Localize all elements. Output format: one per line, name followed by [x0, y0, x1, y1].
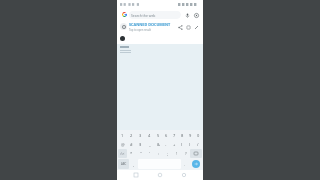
staticText: ( [181, 142, 183, 147]
staticText: 2 [130, 133, 133, 138]
button[interactable]: Share [176, 23, 184, 31]
staticText: _ [149, 142, 151, 147]
button[interactable]: 9 [186, 131, 194, 139]
button[interactable]: / [194, 140, 202, 148]
staticText: Tap to open result [129, 28, 151, 32]
staticText: " [140, 151, 142, 156]
button[interactable]: + [170, 140, 178, 148]
button[interactable]: @ [118, 140, 127, 148]
button[interactable]: Back [179, 170, 189, 180]
staticText: ; [167, 151, 169, 156]
button[interactable]: Home [155, 170, 165, 180]
button[interactable]: Edit [192, 23, 200, 31]
staticText: 8 [181, 133, 184, 138]
staticText: : [158, 151, 160, 156]
button[interactable]: , [129, 159, 138, 169]
staticText: ABC [121, 162, 127, 166]
button[interactable]: $ [136, 140, 145, 148]
staticText: 4 [148, 133, 151, 138]
button[interactable]: ! [172, 149, 181, 158]
button[interactable]: Copy [184, 23, 192, 31]
button[interactable]: ? [181, 149, 190, 158]
button[interactable]: - [162, 140, 170, 148]
button[interactable]: =\< [118, 149, 127, 158]
button[interactable]: 2 [127, 131, 136, 139]
button[interactable]: 6 [162, 131, 170, 139]
staticText: 6 [165, 133, 168, 138]
button[interactable]: Voice search [183, 11, 191, 19]
button[interactable]: 4 [145, 131, 154, 139]
staticText: SCANNED DOCUMENT [129, 22, 171, 27]
button[interactable]: : [154, 149, 163, 158]
staticText: @ [121, 142, 125, 147]
button[interactable]: App icon [120, 23, 127, 30]
staticText: * [130, 151, 133, 156]
staticText: $ [139, 142, 142, 147]
staticText: . [184, 162, 186, 167]
staticText: ) [189, 142, 191, 147]
button[interactable]: SCANNED DOCUMENT [129, 22, 176, 32]
button[interactable]: _ [145, 140, 154, 148]
button[interactable]: * [127, 149, 136, 158]
staticText: ! [176, 151, 178, 156]
button[interactable]: ; [163, 149, 172, 158]
staticText: Search the web [131, 13, 156, 18]
staticText: =\< [120, 152, 125, 156]
button[interactable]: Enter [192, 160, 200, 168]
button[interactable]: ' [145, 149, 154, 158]
staticText: - [165, 142, 167, 147]
button[interactable]: & [154, 140, 162, 148]
button[interactable]: Backspace [190, 149, 202, 158]
button[interactable]: 8 [178, 131, 186, 139]
button[interactable]: ) [186, 140, 194, 148]
staticText: 3 [139, 133, 142, 138]
staticText: 1 [121, 133, 124, 138]
button[interactable]: Search the web [120, 10, 181, 19]
staticText: 0 [197, 133, 200, 138]
staticText: 5 [157, 133, 160, 138]
button[interactable]: 5 [154, 131, 162, 139]
button[interactable]: " [136, 149, 145, 158]
staticText: # [130, 142, 133, 147]
staticText: + [173, 142, 176, 147]
staticText: & [157, 142, 160, 147]
staticText: ? [185, 151, 187, 156]
button[interactable]: Account [120, 36, 125, 41]
staticText: , [133, 162, 135, 167]
button[interactable]: # [127, 140, 136, 148]
button[interactable]: 0 [194, 131, 202, 139]
button[interactable]: 1 [118, 131, 127, 139]
button[interactable]: Recents [131, 170, 141, 180]
button[interactable]: ( [178, 140, 186, 148]
staticText: 9 [189, 133, 192, 138]
button[interactable]: Google Lens [192, 11, 200, 19]
button[interactable]: 7 [170, 131, 178, 139]
button[interactable]: ABC [118, 159, 129, 169]
staticText: / [197, 142, 199, 147]
staticText: ' [149, 151, 150, 156]
button[interactable]: 3 [136, 131, 145, 139]
staticText: 7 [173, 133, 176, 138]
